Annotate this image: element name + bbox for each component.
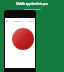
- staticText: Mobile app that lets you: [16, 2, 48, 6]
- button[interactable]: Send: [28, 19, 34, 22]
- staticText: Photo: [14, 19, 21, 22]
- staticText: find and share: [24, 7, 41, 10]
- staticText: Send: [28, 19, 34, 22]
- button[interactable]: Back: [5, 19, 9, 23]
